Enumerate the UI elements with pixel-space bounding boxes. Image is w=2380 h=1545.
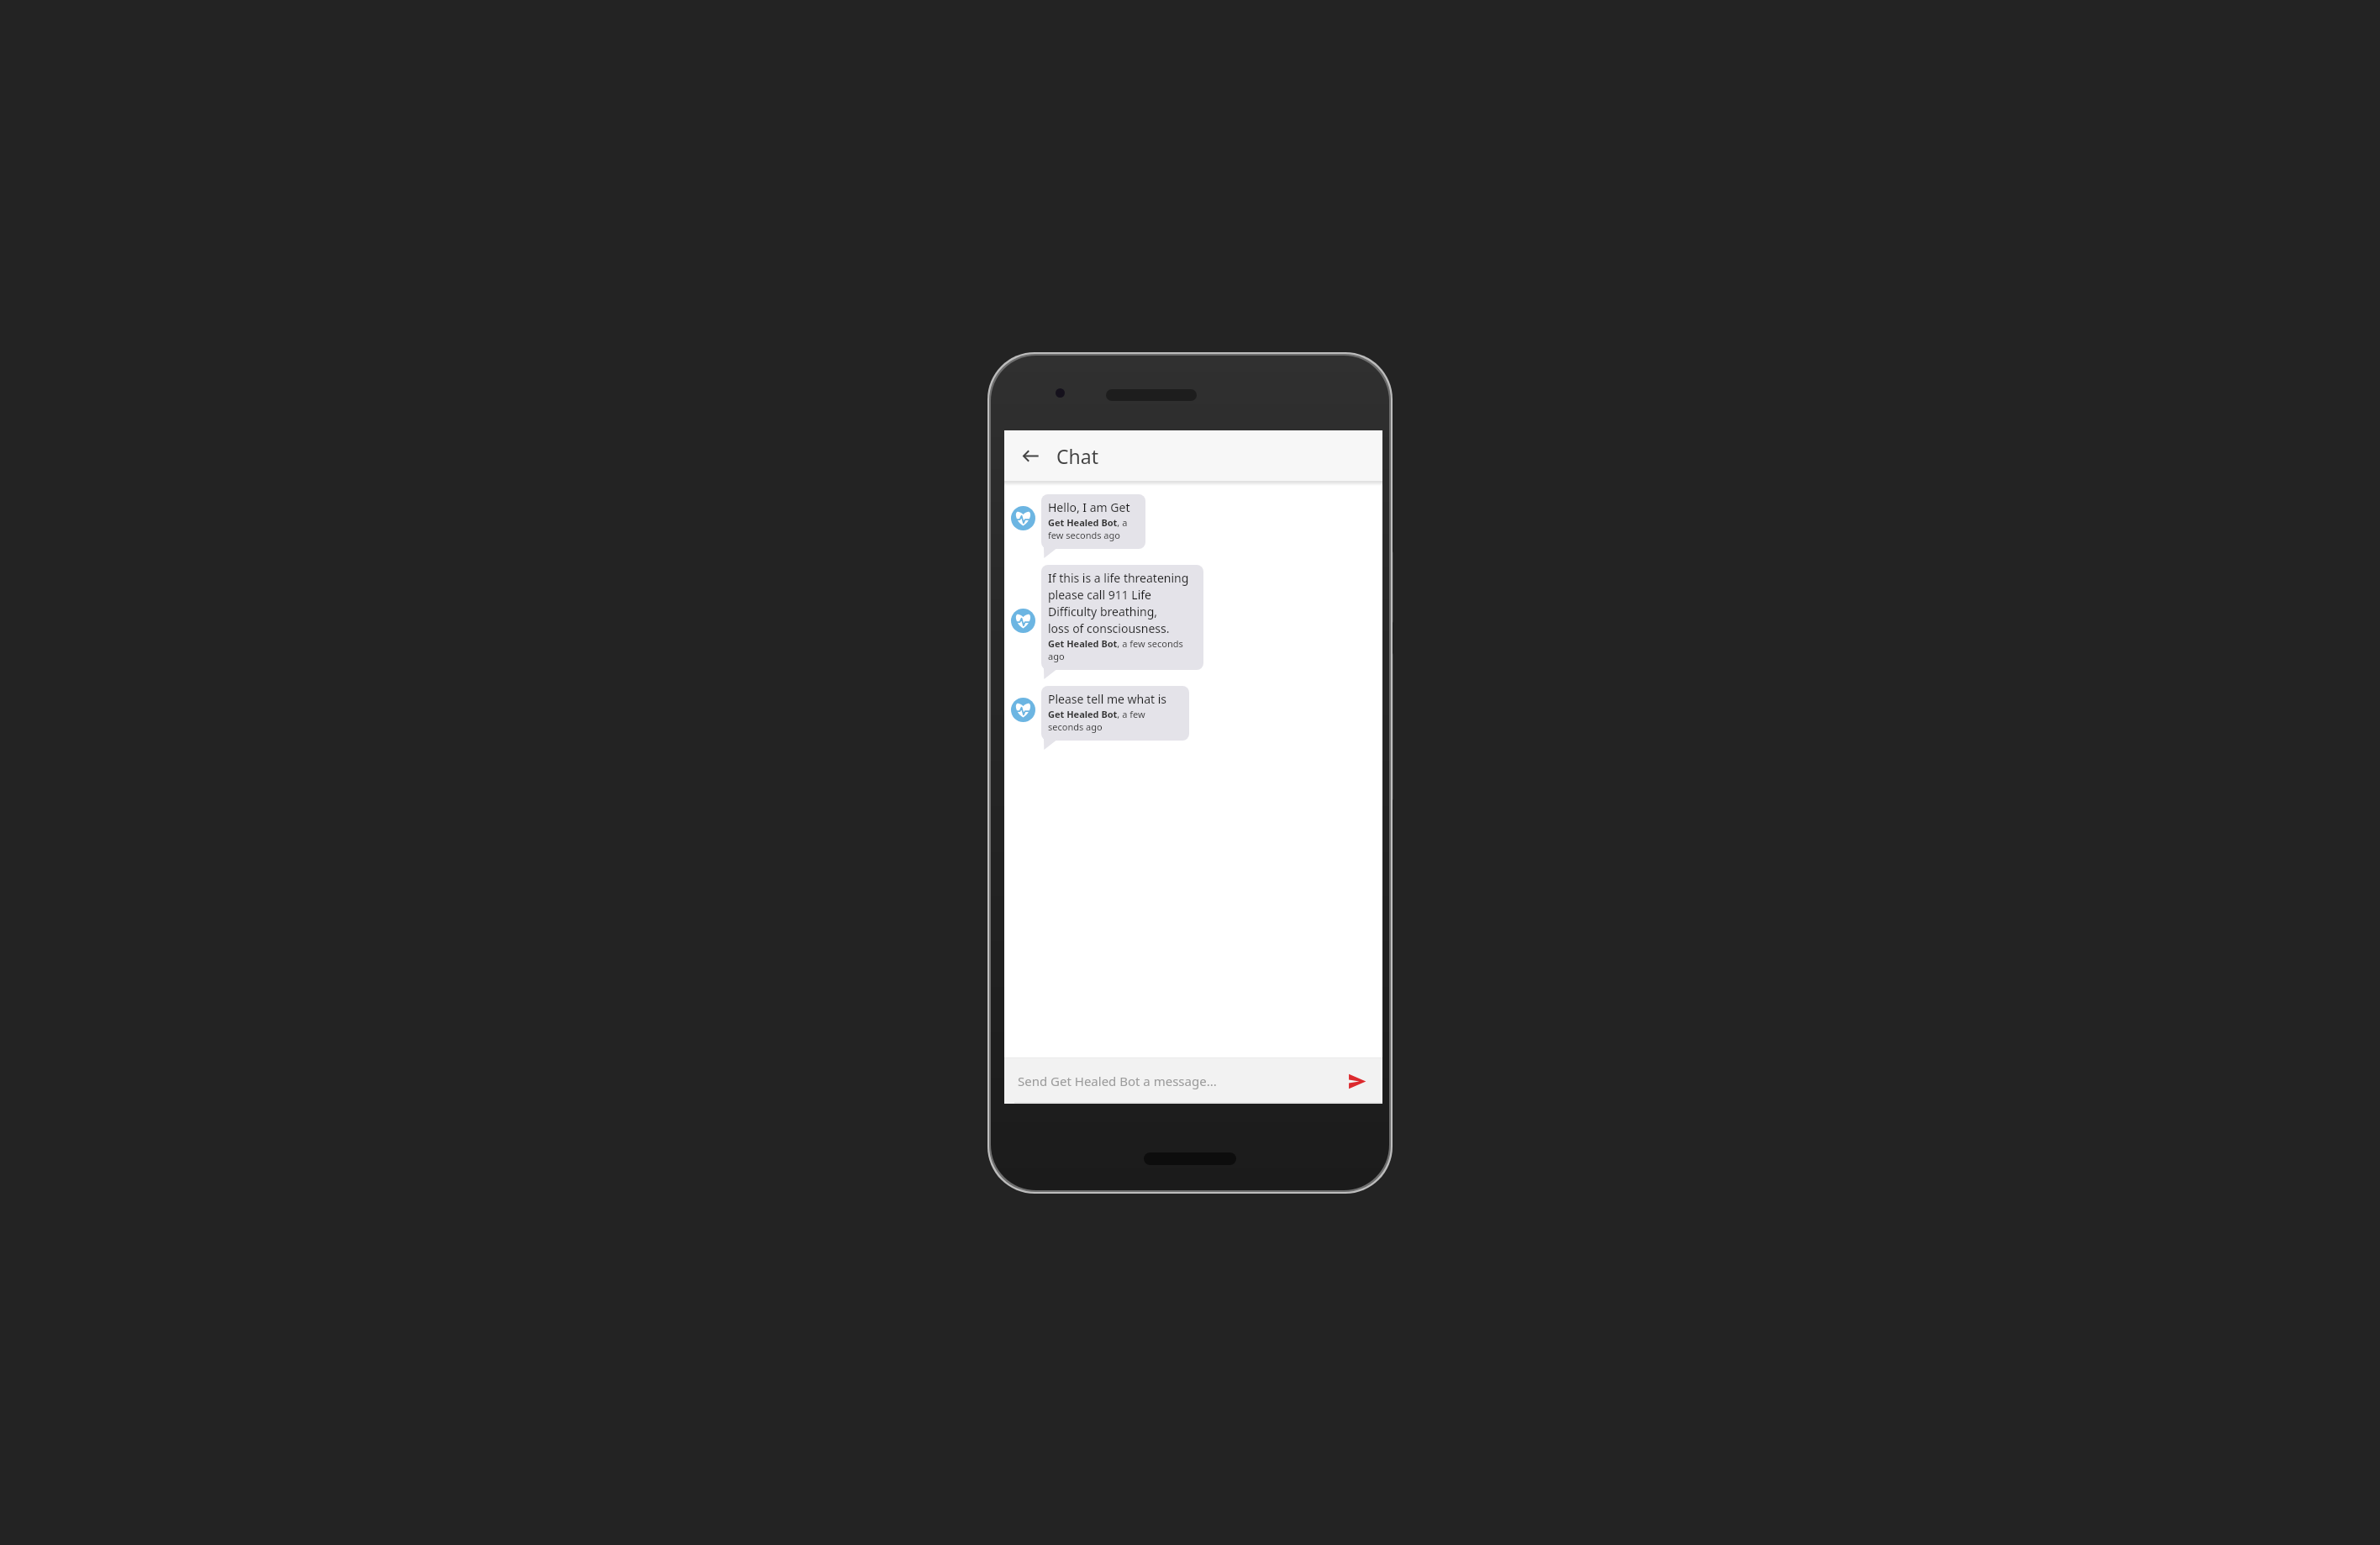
staticText: Get Healed Bot, a few seconds ago bbox=[1048, 708, 1182, 733]
button[interactable]: Back bbox=[1012, 437, 1049, 474]
staticText: Get Healed Bot, a few seconds ago bbox=[1048, 516, 1139, 541]
staticText: Difficulty breathing, Unresponsiveness, bbox=[1048, 604, 1197, 620]
staticText: If this is a life threatening emergency bbox=[1048, 570, 1197, 586]
staticText: Get Healed Bot, a few seconds ago bbox=[1048, 637, 1197, 662]
staticText: Please tell me what is bothering you? bbox=[1048, 691, 1182, 707]
button[interactable]: Send Get Healed Bot a message... bbox=[1004, 1058, 1335, 1104]
button[interactable]: If this is a life threatening emergency bbox=[1004, 565, 1382, 670]
staticText: Chat bbox=[1056, 443, 1098, 469]
staticText: Send Get Healed Bot a message... bbox=[1018, 1073, 1217, 1089]
button[interactable]: Send bbox=[1335, 1060, 1377, 1102]
staticText: Hello, I am Get Healed! bbox=[1048, 499, 1139, 515]
staticText: please call 911 Life threatening include… bbox=[1048, 587, 1197, 603]
button[interactable]: Hello, I am Get Healed! bbox=[1004, 494, 1382, 549]
button[interactable]: Please tell me what is bothering you? bbox=[1004, 686, 1382, 741]
staticText: loss of consciousness. bbox=[1048, 620, 1170, 636]
